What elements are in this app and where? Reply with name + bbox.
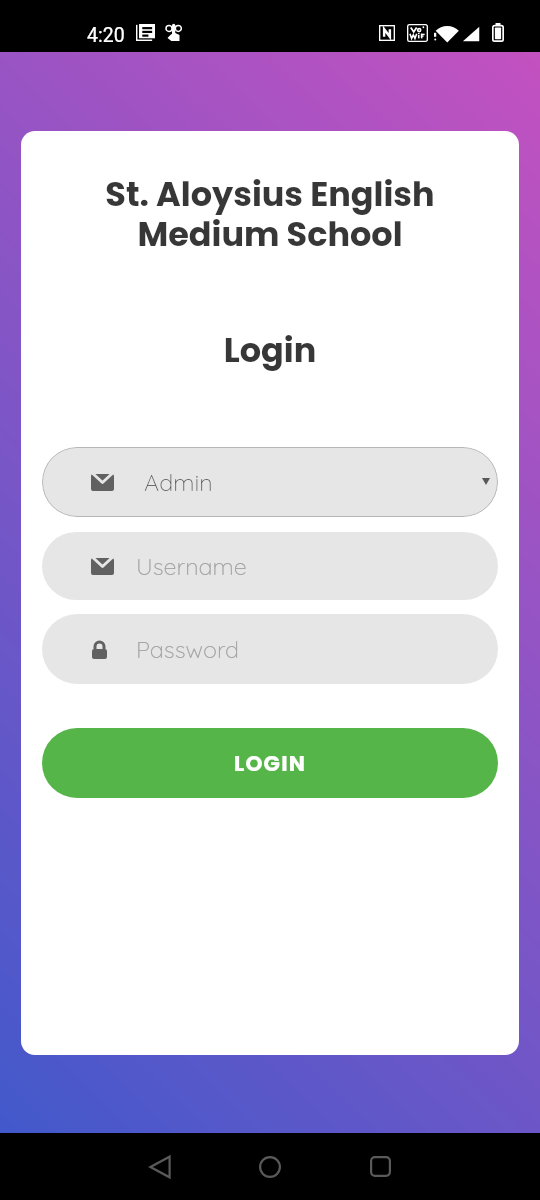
button[interactable]: Home xyxy=(225,1133,315,1200)
staticText: Username xyxy=(136,552,247,581)
button[interactable]: LOGIN xyxy=(42,728,498,798)
button[interactable]: Recents xyxy=(335,1133,425,1200)
staticText: Password xyxy=(136,635,240,664)
staticText: Login xyxy=(21,327,519,374)
button[interactable]: Username xyxy=(42,532,498,600)
staticText: 4:20 xyxy=(87,24,125,47)
staticText: LOGIN xyxy=(234,748,307,778)
button[interactable]: Select user type xyxy=(42,447,498,517)
button[interactable]: Back xyxy=(115,1133,205,1200)
button[interactable]: Password xyxy=(42,614,498,684)
staticText: Admin xyxy=(144,468,213,497)
staticText: St. Aloysius English Medium School xyxy=(21,171,519,258)
